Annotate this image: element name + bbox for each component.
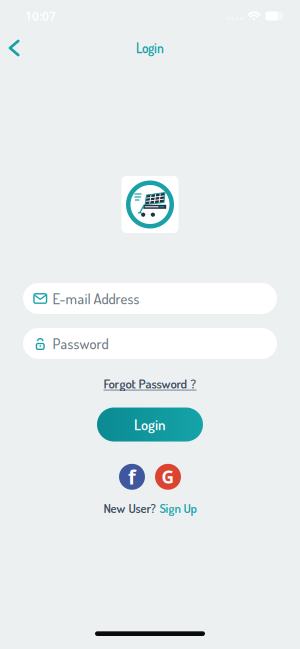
button[interactable]: Login [97,407,203,441]
button[interactable]: E-mail Address [23,283,277,314]
staticText: Password [52,334,108,353]
staticText: New User? [103,500,155,516]
button[interactable]: Back [0,33,21,62]
button[interactable]: Sign in with Facebook [119,463,145,490]
button[interactable]: Password [23,328,277,359]
button[interactable]: Sign in with Google [155,464,181,490]
staticText: Forgot Password ? [103,375,196,391]
button[interactable]: Sign Up [159,500,196,516]
staticText: G [161,465,174,488]
staticText: E-mail Address [52,289,139,308]
staticText: Login [136,40,164,56]
staticText: 10:07 [25,8,56,24]
staticText: f [128,463,136,490]
button[interactable]: Forgot Password ? [103,375,196,391]
staticText: Login [134,415,166,434]
staticText: Sign Up [159,500,196,516]
